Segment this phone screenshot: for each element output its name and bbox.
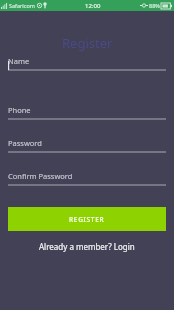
staticText: 12:00 bbox=[85, 2, 101, 10]
button[interactable]: Confirm Password bbox=[0, 171, 174, 197]
button[interactable]: REGISTER bbox=[8, 207, 166, 231]
button[interactable]: Phone bbox=[0, 105, 174, 131]
button[interactable]: Name bbox=[0, 56, 174, 82]
button[interactable]: Already a member? Login bbox=[0, 239, 174, 253]
staticText: Register bbox=[62, 34, 113, 52]
other: Signal strength bbox=[1, 2, 8, 9]
staticText: Phone bbox=[8, 105, 31, 115]
staticText: Already a member? Login bbox=[39, 241, 135, 252]
staticText: REGISTER bbox=[69, 215, 105, 224]
staticText: Name bbox=[8, 56, 30, 66]
button[interactable]: Password bbox=[0, 138, 174, 164]
other: Battery 88 percent bbox=[161, 3, 172, 9]
staticText: 88% bbox=[149, 2, 160, 9]
staticText: Safaricom bbox=[9, 2, 35, 9]
staticText: Password bbox=[8, 138, 42, 148]
staticText: Confirm Password bbox=[8, 171, 73, 181]
